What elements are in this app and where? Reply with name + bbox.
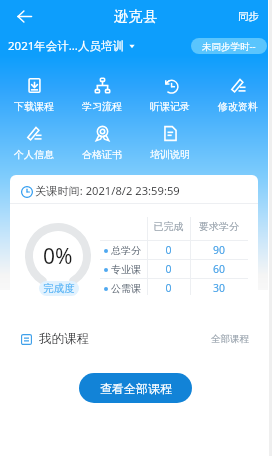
staticText: 公需课: [111, 282, 141, 295]
button[interactable]: 修改资料: [204, 78, 272, 113]
staticText: 我的课程: [39, 331, 89, 347]
staticText: 关课时间: 2021/8/2 23:59:59: [35, 183, 180, 198]
button[interactable]: 个人信息: [0, 126, 68, 161]
button[interactable]: 同步: [225, 4, 272, 29]
staticText: 培训说明: [150, 148, 190, 161]
staticText: 已完成: [147, 220, 190, 233]
staticText: 听课记录: [150, 100, 190, 113]
staticText: 合格证书: [82, 148, 122, 161]
staticText: 逊克县: [114, 7, 158, 25]
button[interactable]: Back: [10, 2, 38, 30]
staticText: 修改资料: [218, 100, 258, 113]
button[interactable]: 听课记录: [136, 78, 204, 113]
button[interactable]: 下载课程: [0, 78, 68, 113]
staticText: 0%: [43, 242, 73, 271]
staticText: 全部课程: [211, 333, 249, 345]
button[interactable]: 合格证书: [68, 126, 136, 161]
staticText: 个人信息: [14, 148, 54, 161]
staticText: 90: [190, 243, 248, 257]
staticText: 下载课程: [14, 100, 54, 113]
staticText: 总学分: [111, 244, 141, 257]
button[interactable]: 培训说明: [136, 126, 204, 161]
button[interactable]: 全部课程: [211, 333, 249, 345]
staticText: 0: [147, 281, 190, 295]
button[interactable]: 2021年会计…人员培训: [8, 38, 135, 54]
staticText: 2021年会计…人员培训: [8, 38, 124, 54]
staticText: 60: [190, 262, 248, 276]
staticText: 0: [147, 243, 190, 257]
button[interactable]: 查看全部课程: [79, 373, 192, 403]
staticText: 未同步学时--: [202, 40, 256, 53]
staticText: 专业课: [111, 263, 141, 276]
staticText: 学习流程: [82, 100, 122, 113]
button[interactable]: 学习流程: [68, 78, 136, 113]
staticText: 30: [190, 281, 248, 295]
staticText: 同步: [238, 10, 259, 23]
staticText: 0: [147, 262, 190, 276]
staticText: 完成度: [43, 282, 75, 295]
button[interactable]: 未同步学时--: [191, 38, 267, 54]
staticText: 查看全部课程: [100, 381, 172, 396]
staticText: 要求学分: [190, 220, 248, 233]
